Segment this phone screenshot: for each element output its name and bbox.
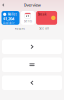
staticText: Streak bbox=[38, 13, 47, 16]
staticText: $1,204 bbox=[3, 16, 14, 21]
staticText: Available bbox=[3, 21, 15, 25]
button[interactable]: See all bbox=[39, 27, 49, 30]
button[interactable]: Streak bbox=[36, 11, 57, 25]
staticText: Recent bbox=[15, 27, 25, 30]
button[interactable]: Wallet bbox=[1, 11, 19, 25]
button[interactable]: Recent bbox=[15, 27, 25, 30]
staticText: 21 bbox=[26, 15, 30, 18]
button[interactable]: Back bbox=[0, 2, 7, 8]
button[interactable]: 21 bbox=[21, 11, 35, 25]
button[interactable]: Menu bbox=[2, 57, 62, 72]
button[interactable]: Next bbox=[2, 39, 62, 54]
staticText: Wallet bbox=[7, 13, 16, 16]
button[interactable]: Previous bbox=[2, 75, 62, 90]
staticText: Overview bbox=[23, 2, 40, 8]
staticText: See all bbox=[39, 27, 49, 30]
staticText: Events bbox=[24, 19, 32, 23]
